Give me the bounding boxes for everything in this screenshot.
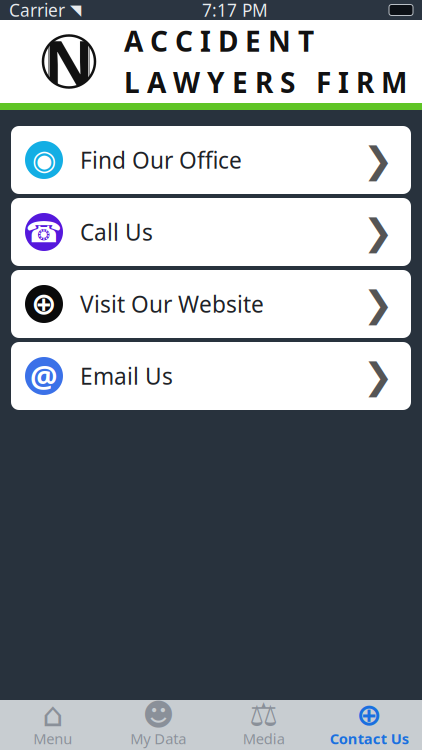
button[interactable]: ⚖ [211,700,316,750]
staticText: ❯ [363,212,393,252]
staticText: ⊕ [356,697,382,732]
staticText: ❯ [363,140,393,180]
staticText: Contact Us [330,729,409,748]
staticText: Find Our Office [80,145,242,175]
staticText: N [44,21,94,102]
staticText: ⊕ [31,287,57,321]
button[interactable]: @ [11,342,411,410]
staticText: N [45,22,93,100]
staticText: 7:17 PM [202,0,268,21]
staticText: ⌂ [42,696,63,734]
staticText: Carrier [9,0,65,21]
button[interactable]: ⊕ [316,700,422,750]
staticText: My Data [130,729,186,748]
staticText: ☎ [25,215,62,249]
staticText: ◉ [32,144,56,176]
staticText: ◥ [70,2,81,18]
staticText: @ [30,356,58,396]
staticText: ❯ [363,284,393,324]
staticText: Email Us [80,361,173,391]
button[interactable]: ☎ [11,198,411,266]
button[interactable]: ◉ [11,126,411,194]
staticText: A C C I D E N T [124,22,314,59]
staticText: Visit Our Website [80,289,264,319]
staticText: ❯ [363,356,393,396]
staticText: Call Us [80,217,153,247]
staticText: Media [243,729,285,748]
staticText: ☻ [142,697,174,732]
staticText: L A W Y E R S F I R M [124,63,407,101]
staticText: ⚖ [249,697,278,733]
button[interactable]: ☻ [105,700,211,750]
button[interactable]: ⌂ [0,700,105,750]
button[interactable]: ⊕ [11,270,411,338]
staticText: Menu [33,729,72,748]
